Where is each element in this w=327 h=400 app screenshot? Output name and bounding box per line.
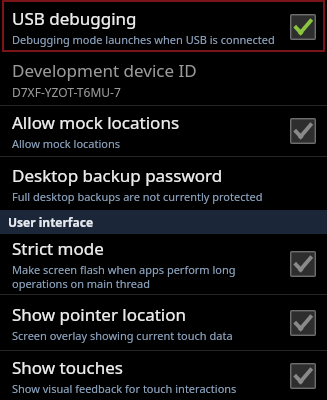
staticText: Full desktop backups are not currently p… [12,189,263,204]
staticText: Allow mock locations [12,111,180,134]
button[interactable]: Unchecked [290,363,316,389]
button[interactable]: Checked [290,14,316,40]
button[interactable]: USB debugging [0,0,327,53]
staticText: USB debugging [12,7,137,30]
staticText: Development device ID [12,59,197,82]
button[interactable]: Show pointer location [0,295,327,350]
staticText: Desktop backup password [12,164,223,187]
button[interactable]: Unchecked [290,251,316,277]
staticText: Show visual feedback for touch interacti… [12,381,237,396]
staticText: Show touches [12,356,123,379]
button[interactable]: Unchecked [290,118,316,144]
staticText: User interface [8,214,94,230]
button[interactable]: Unchecked [290,310,316,336]
staticText: Make screen flash when apps perform long… [12,262,236,291]
staticText: Allow mock locations [12,136,121,151]
button[interactable]: Strict mode [0,234,327,294]
staticText: Strict mode [12,237,104,260]
button[interactable]: Development device ID [0,53,327,105]
button[interactable]: Desktop backup password [0,157,327,210]
staticText: Debugging mode launches when USB is conn… [12,32,275,47]
staticText: Show pointer location [12,303,187,326]
button[interactable]: Show touches [0,351,327,400]
staticText: Screen overlay showing current touch dat… [12,328,233,343]
button[interactable]: Allow mock locations [0,106,327,156]
staticText: D7XF-YZOT-T6MU-7 [12,84,121,100]
